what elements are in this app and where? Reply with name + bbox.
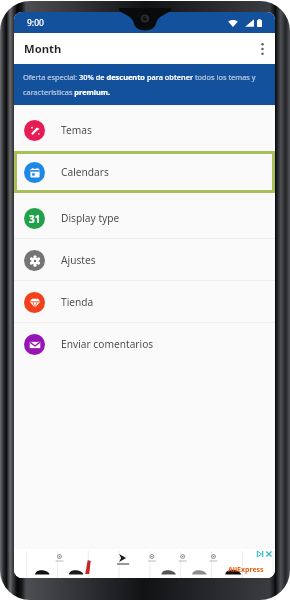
staticText: Temas	[61, 123, 92, 137]
button[interactable]: Enviar comentarios	[14, 323, 275, 365]
staticText: 31	[29, 212, 41, 226]
staticText: AliExpress	[228, 565, 264, 575]
staticText: Ajustes	[61, 253, 96, 267]
button[interactable]: 31	[14, 197, 275, 239]
button[interactable]: Tienda	[14, 281, 275, 323]
staticText: Calendars	[61, 165, 109, 179]
staticText: Tienda	[61, 295, 94, 309]
button[interactable]: Ajustes	[14, 239, 275, 281]
staticText: Display type	[61, 211, 120, 225]
staticText: 9:00	[27, 17, 44, 29]
button[interactable]: Oferta especial: 30% de descuento para o…	[14, 64, 275, 105]
staticText: Enviar comentarios	[61, 337, 154, 351]
button[interactable]: Temas	[14, 109, 275, 151]
button[interactable]: AliExpress advertisement	[14, 549, 275, 578]
staticText: Oferta especial: 30% de descuento para o…	[23, 72, 268, 97]
staticText: Month	[24, 41, 62, 56]
button[interactable]: More options	[249, 36, 275, 62]
button[interactable]: Calendars	[14, 151, 275, 193]
